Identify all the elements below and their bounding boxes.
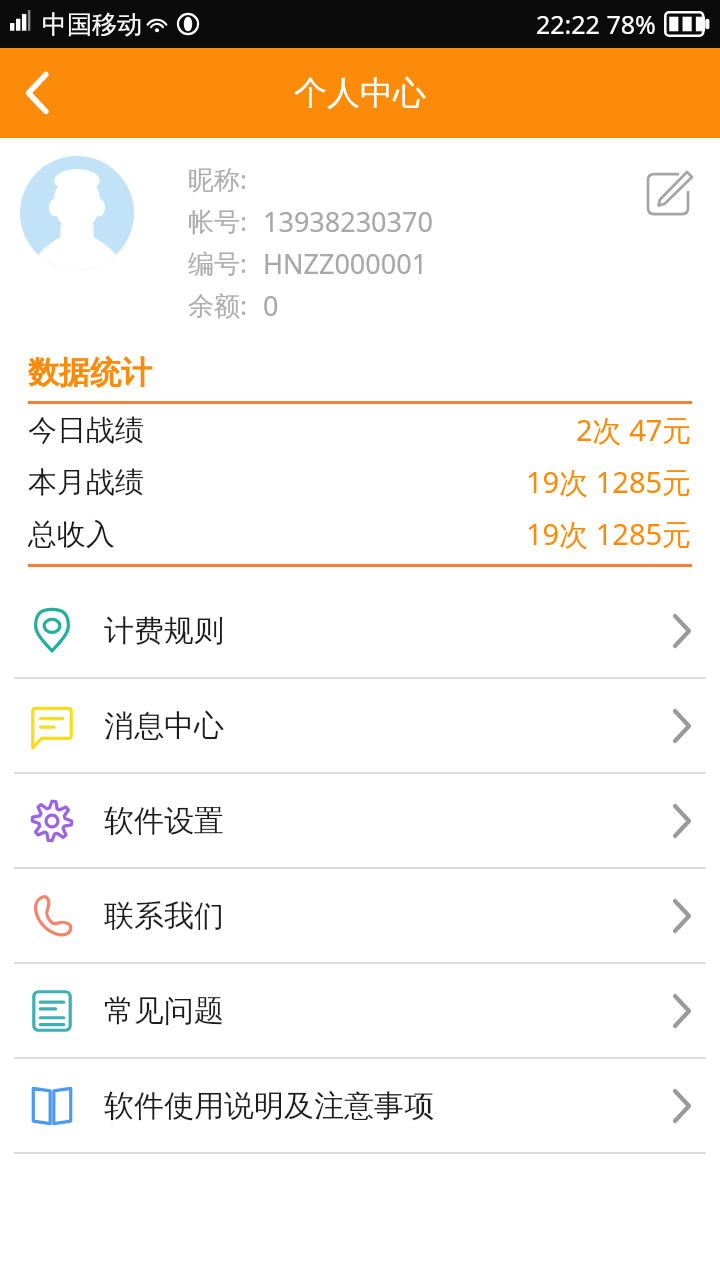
- button[interactable]: 消息中心: [0, 679, 720, 774]
- staticText: 中国移动: [42, 9, 142, 40]
- staticText: 19次 1285元: [526, 462, 692, 502]
- button[interactable]: 软件设置: [0, 774, 720, 869]
- button[interactable]: 今日战绩: [0, 404, 720, 456]
- staticText: 计费规则: [104, 612, 224, 650]
- staticText: 帐号:: [188, 203, 247, 239]
- staticText: 总收入: [28, 516, 115, 553]
- button[interactable]: 常见问题: [0, 964, 720, 1059]
- staticText: 软件使用说明及注意事项: [104, 1087, 434, 1125]
- staticText: 消息中心: [104, 707, 224, 745]
- staticText: 昵称:: [188, 161, 247, 197]
- staticText: 软件设置: [104, 802, 224, 840]
- button[interactable]: 联系我们: [0, 869, 720, 964]
- button[interactable]: Edit profile: [630, 156, 706, 232]
- button[interactable]: 本月战绩: [0, 456, 720, 508]
- staticText: 22:22 78%: [536, 7, 656, 41]
- staticText: 联系我们: [104, 897, 224, 935]
- staticText: 余额:: [188, 287, 247, 323]
- button[interactable]: 软件使用说明及注意事项: [0, 1059, 720, 1154]
- staticText: 个人中心: [294, 72, 426, 114]
- staticText: 编号:: [188, 245, 247, 281]
- button[interactable]: Back: [0, 55, 76, 131]
- button[interactable]: Avatar: [20, 156, 134, 270]
- staticText: 13938230370: [263, 203, 433, 240]
- staticText: 2次 47元: [576, 410, 692, 450]
- staticText: 19次 1285元: [526, 514, 692, 554]
- staticText: 本月战绩: [28, 464, 144, 501]
- staticText: 今日战绩: [28, 412, 144, 449]
- button[interactable]: 总收入: [0, 508, 720, 560]
- staticText: 0: [263, 287, 279, 324]
- button[interactable]: 计费规则: [0, 584, 720, 679]
- staticText: 常见问题: [104, 992, 224, 1030]
- staticText: 数据统计: [28, 353, 152, 392]
- staticText: HNZZ000001: [263, 245, 428, 282]
